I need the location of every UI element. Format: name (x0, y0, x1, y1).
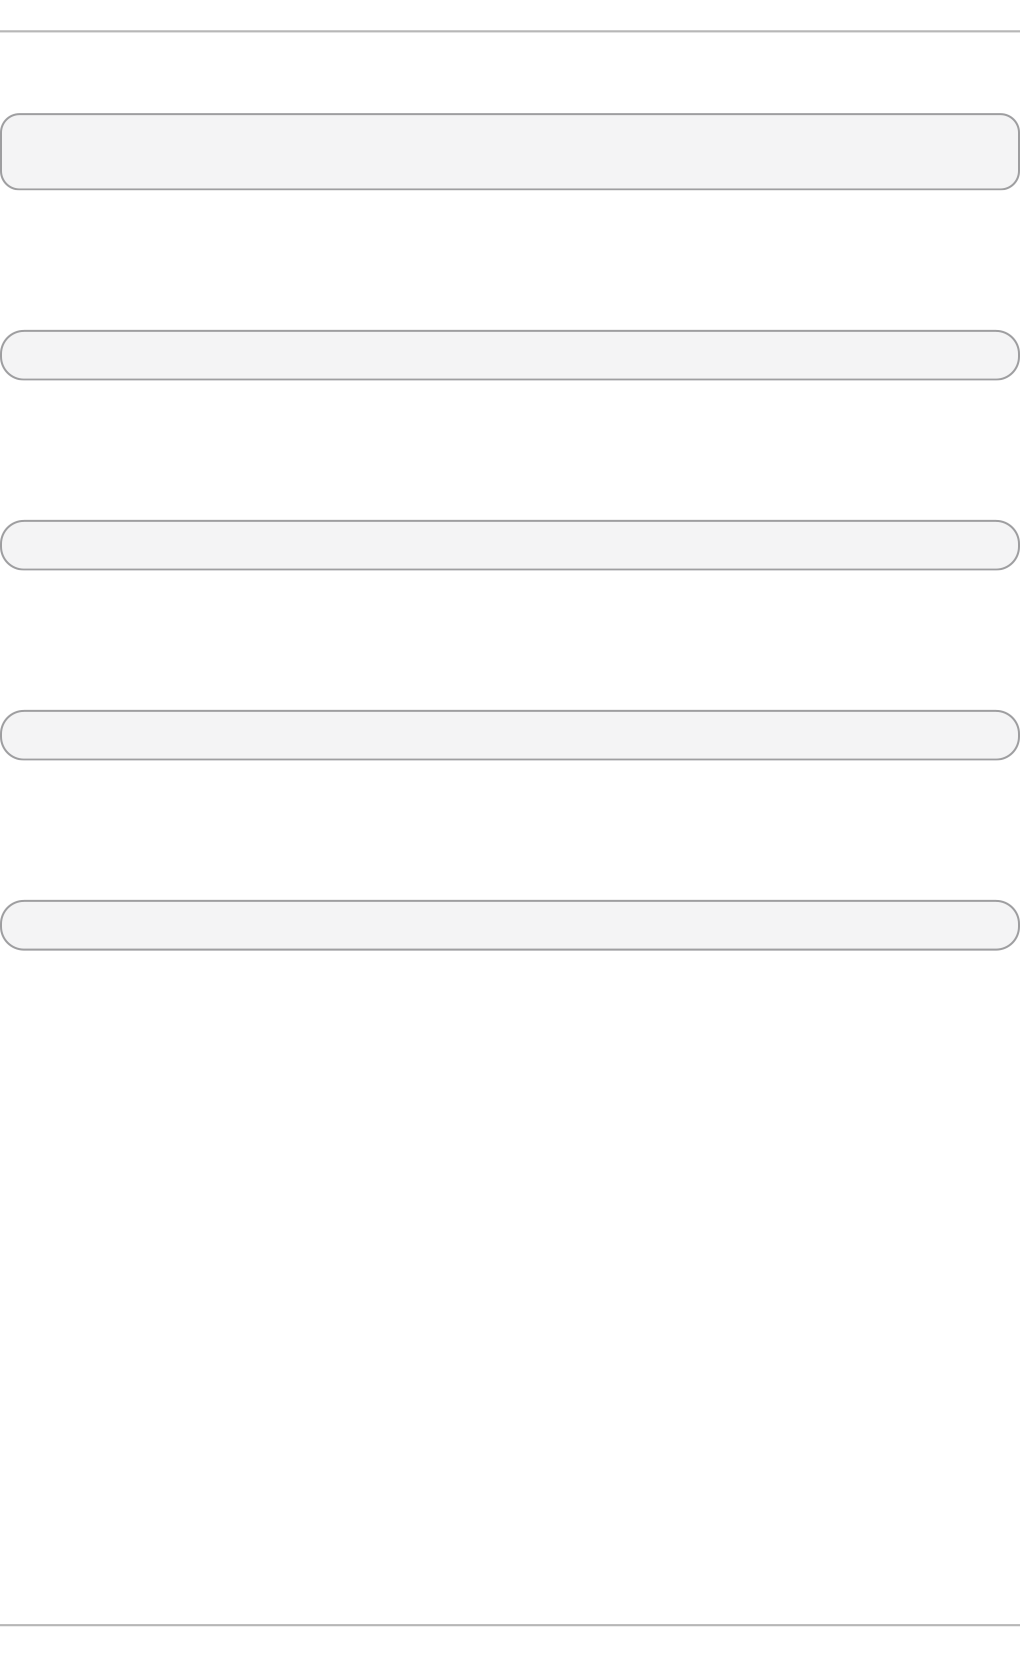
button[interactable]: Loading featured content (0, 113, 1020, 190)
button[interactable]: Loading item 4 (0, 900, 1020, 951)
button[interactable]: Loading item 1 (0, 330, 1020, 381)
button[interactable]: Loading item 2 (0, 520, 1020, 571)
button[interactable]: Loading item 3 (0, 710, 1020, 761)
